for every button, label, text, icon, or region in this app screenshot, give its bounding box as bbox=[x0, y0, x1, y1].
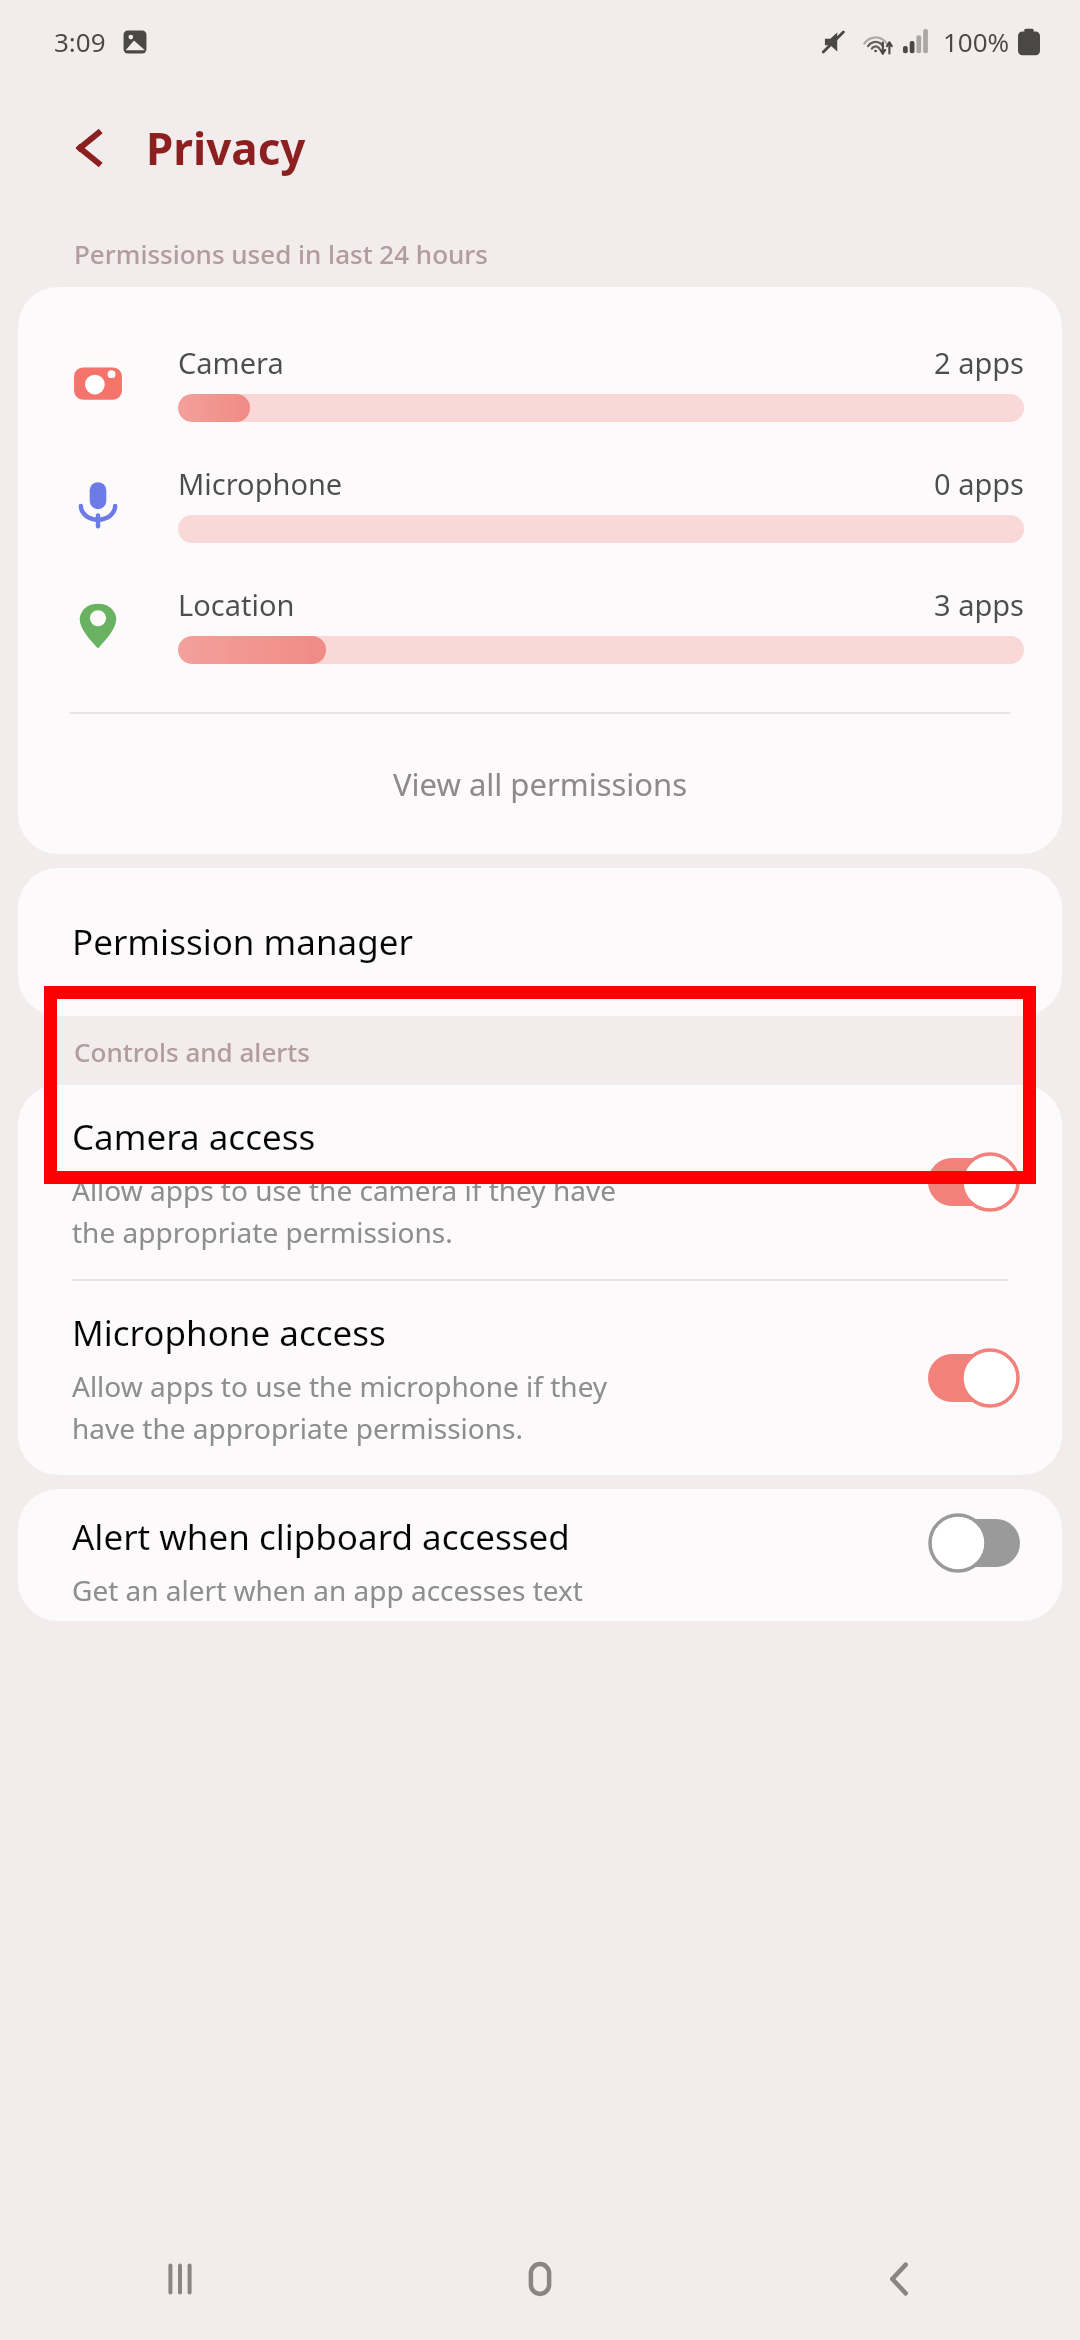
button[interactable]: Switch on bbox=[928, 1152, 1020, 1212]
staticText: Microphone access bbox=[72, 1309, 386, 1357]
staticText: Get an alert when an app accesses text bbox=[72, 1571, 583, 1609]
staticText: Camera access bbox=[72, 1113, 316, 1161]
button[interactable]: Microphone access bbox=[18, 1281, 1062, 1475]
staticText: Microphone bbox=[178, 464, 343, 503]
staticText: Allow apps to use the camera if they hav… bbox=[72, 1171, 616, 1251]
staticText: 3:09 bbox=[54, 24, 106, 59]
button[interactable]: Recent apps bbox=[0, 2218, 360, 2340]
button[interactable]: Alert when clipboard accessed bbox=[18, 1489, 1062, 1609]
staticText: Permissions used in last 24 hours bbox=[74, 236, 488, 271]
staticText: 100% bbox=[943, 24, 1010, 59]
staticText: 3 apps bbox=[934, 585, 1024, 624]
staticText: 2 apps bbox=[934, 343, 1024, 382]
button[interactable]: Switch off bbox=[928, 1513, 1020, 1573]
button[interactable]: Camera access bbox=[18, 1085, 1062, 1279]
staticText: Controls and alerts bbox=[74, 1034, 310, 1069]
staticText: Permission manager bbox=[72, 918, 413, 966]
button[interactable]: Home bbox=[360, 2218, 720, 2340]
staticText: Alert when clipboard accessed bbox=[72, 1513, 570, 1561]
button[interactable]: Back bbox=[720, 2218, 1080, 2340]
staticText: View all permissions bbox=[393, 763, 688, 805]
button[interactable]: View all permissions bbox=[18, 714, 1062, 854]
staticText: Camera bbox=[178, 343, 284, 382]
staticText: 0 apps bbox=[934, 464, 1024, 503]
button[interactable]: Back bbox=[56, 114, 124, 182]
staticText: Allow apps to use the microphone if they… bbox=[72, 1367, 608, 1447]
staticText: Location bbox=[178, 585, 295, 624]
button[interactable]: Switch on bbox=[928, 1348, 1020, 1408]
button[interactable]: Permission manager bbox=[18, 868, 1062, 1016]
staticText: Privacy bbox=[146, 118, 306, 178]
